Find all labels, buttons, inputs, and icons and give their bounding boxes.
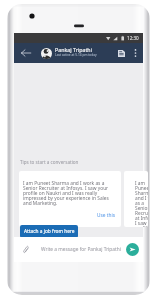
button[interactable]: Attach a job from here [20, 225, 78, 238]
button[interactable]: I am Puneet Sharma and I work as a Senio… [19, 171, 121, 227]
button[interactable]: More options [128, 43, 142, 63]
staticText: Pankaj Tripathi [55, 46, 93, 53]
staticText: 12:30 [127, 35, 139, 41]
staticText: Tips to start a conversation [20, 159, 79, 165]
button[interactable]: I am Puneet Sharma and I work as a Senio… [124, 171, 148, 227]
staticText: Use this [19, 212, 115, 219]
staticText: Attach a job from here [24, 228, 75, 235]
staticText: Last active at 5.14 pm today [55, 53, 97, 57]
staticText: I am Puneet Sharma and I work as a Senio… [23, 180, 111, 206]
button[interactable]: Attach file [18, 242, 33, 257]
button[interactable]: Notes [114, 43, 129, 63]
button[interactable]: Back [16, 43, 36, 63]
staticText: Write a message for Pankaj Tripathi [41, 246, 121, 253]
button[interactable]: Send [126, 243, 139, 256]
staticText: I am Puneet Sharma and I work as a Senio… [135, 180, 148, 227]
